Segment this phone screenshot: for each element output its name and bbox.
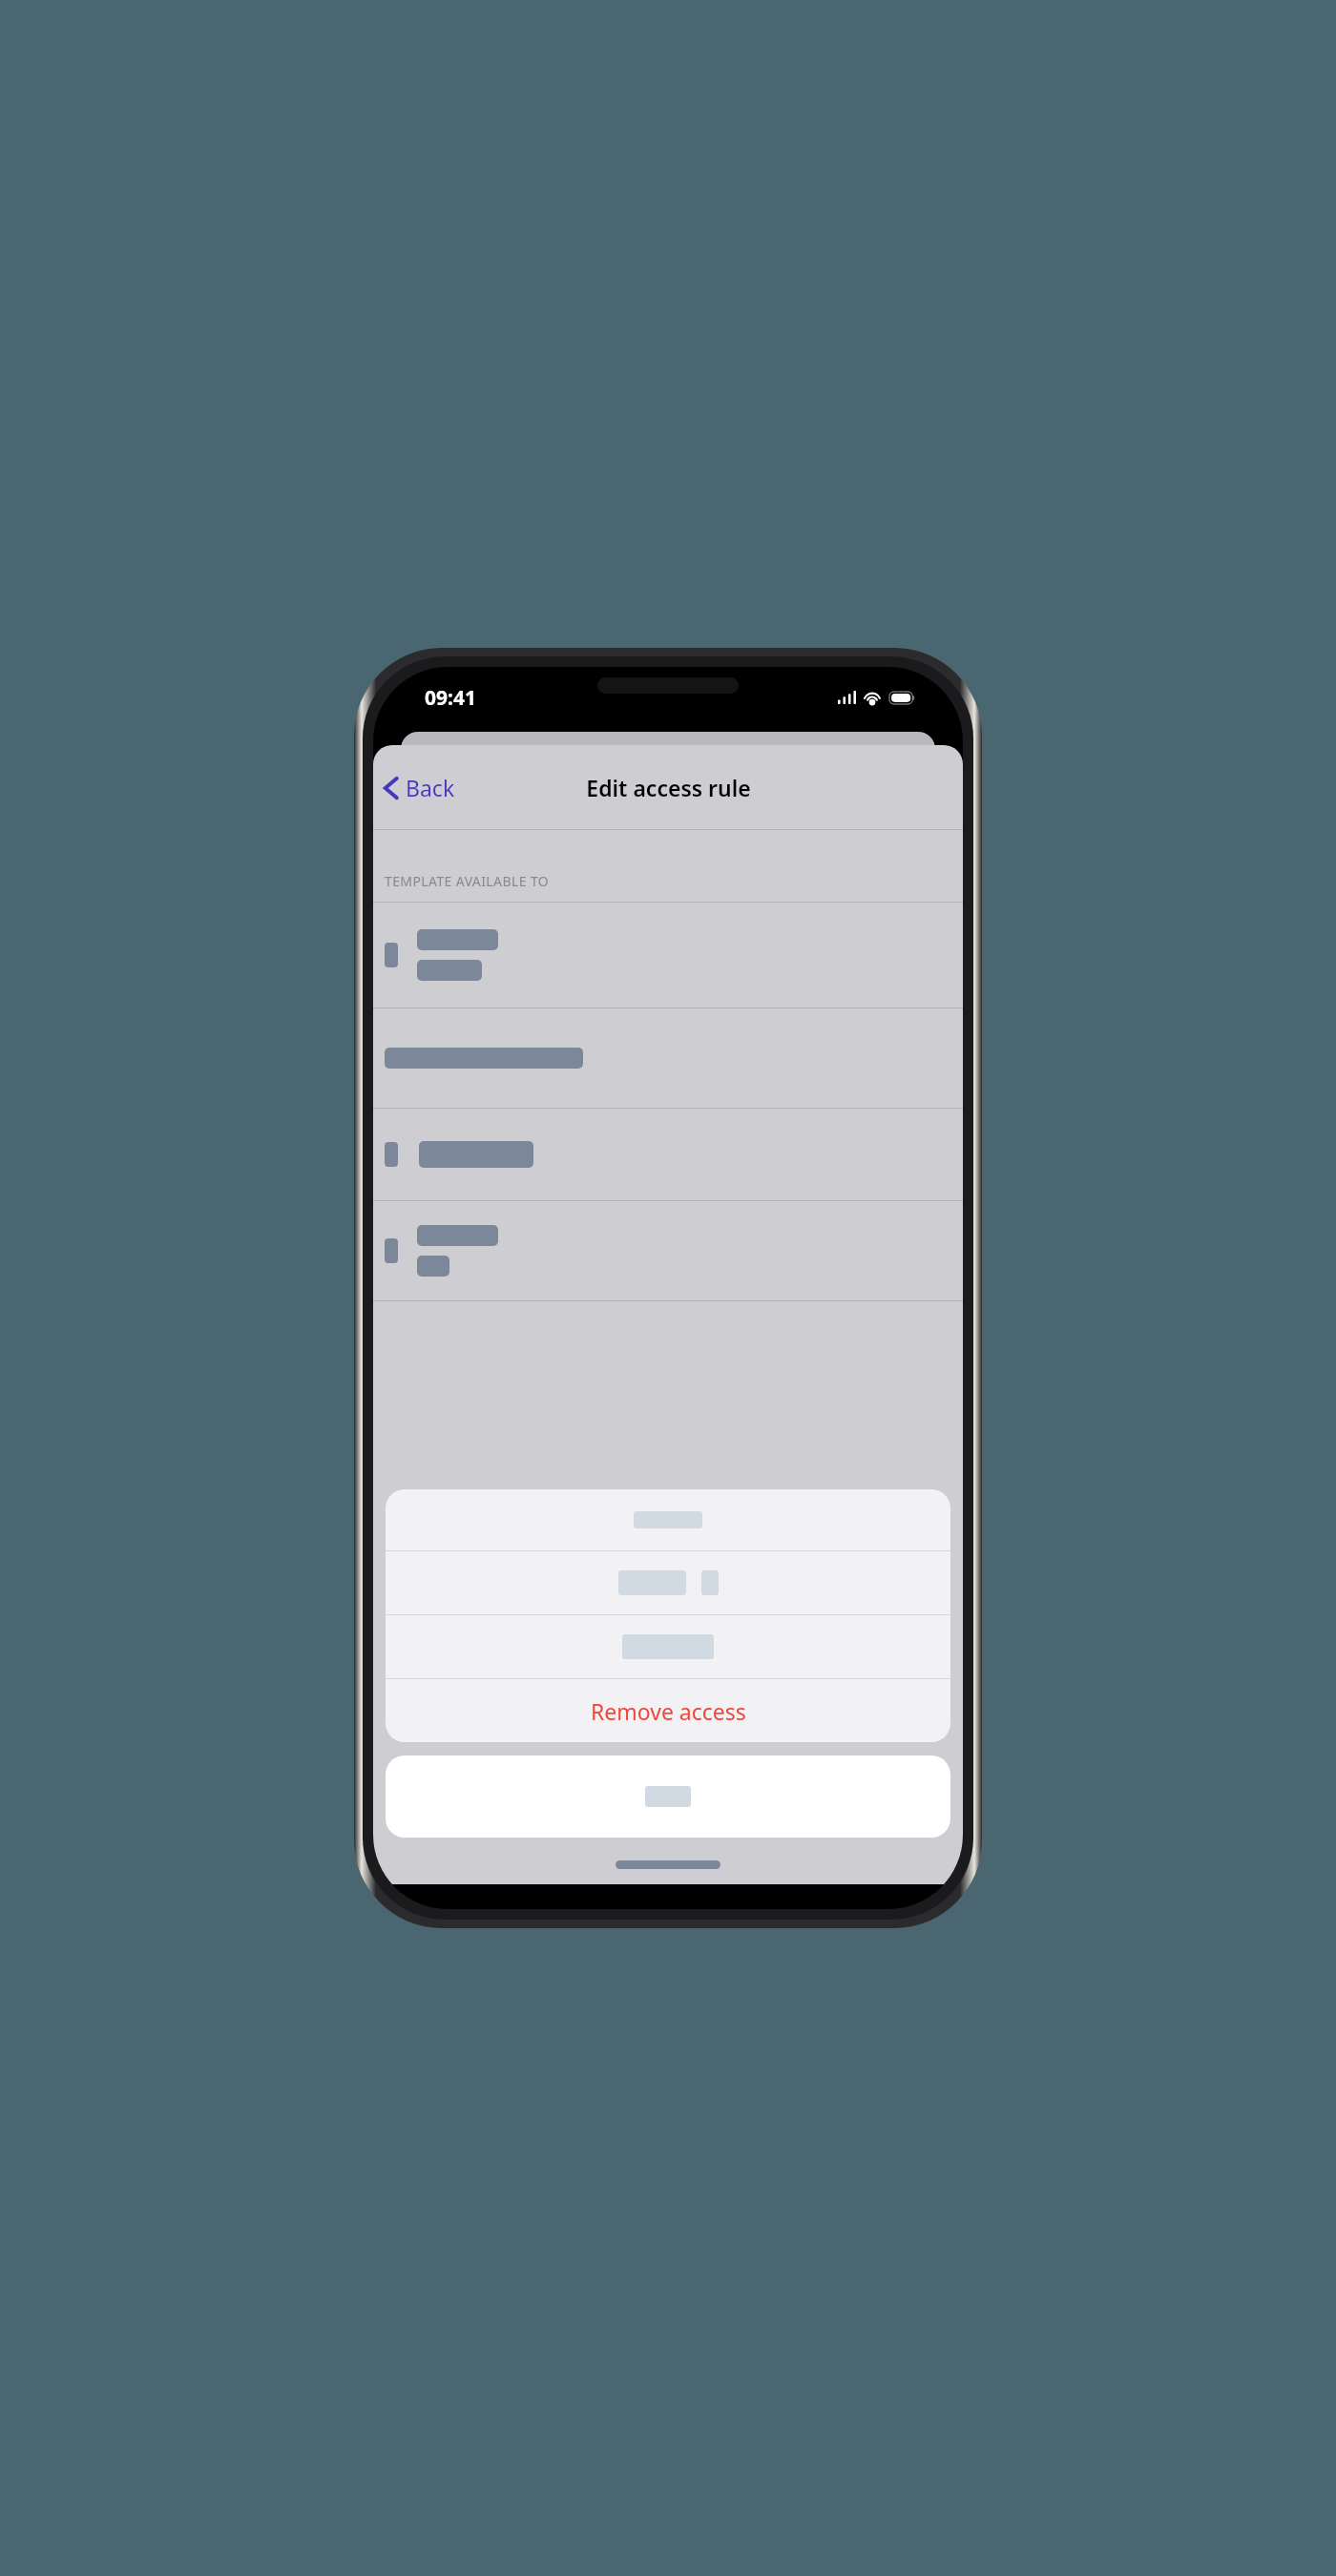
button[interactable] <box>386 1615 950 1678</box>
staticText: Back <box>406 773 455 802</box>
button[interactable] <box>373 1008 963 1108</box>
button[interactable] <box>373 903 963 1008</box>
button[interactable]: Remove access <box>386 1679 950 1742</box>
staticText: 09:41 <box>425 684 476 712</box>
staticText: Remove access <box>591 1696 746 1726</box>
staticText: TEMPLATE AVAILABLE TO <box>385 872 550 890</box>
button[interactable]: Back <box>373 767 469 808</box>
button[interactable] <box>373 1109 963 1200</box>
button[interactable] <box>386 1489 950 1550</box>
button[interactable] <box>386 1551 950 1614</box>
staticText: Edit access rule <box>586 773 751 802</box>
button[interactable] <box>386 1755 950 1838</box>
button[interactable] <box>373 1201 963 1300</box>
